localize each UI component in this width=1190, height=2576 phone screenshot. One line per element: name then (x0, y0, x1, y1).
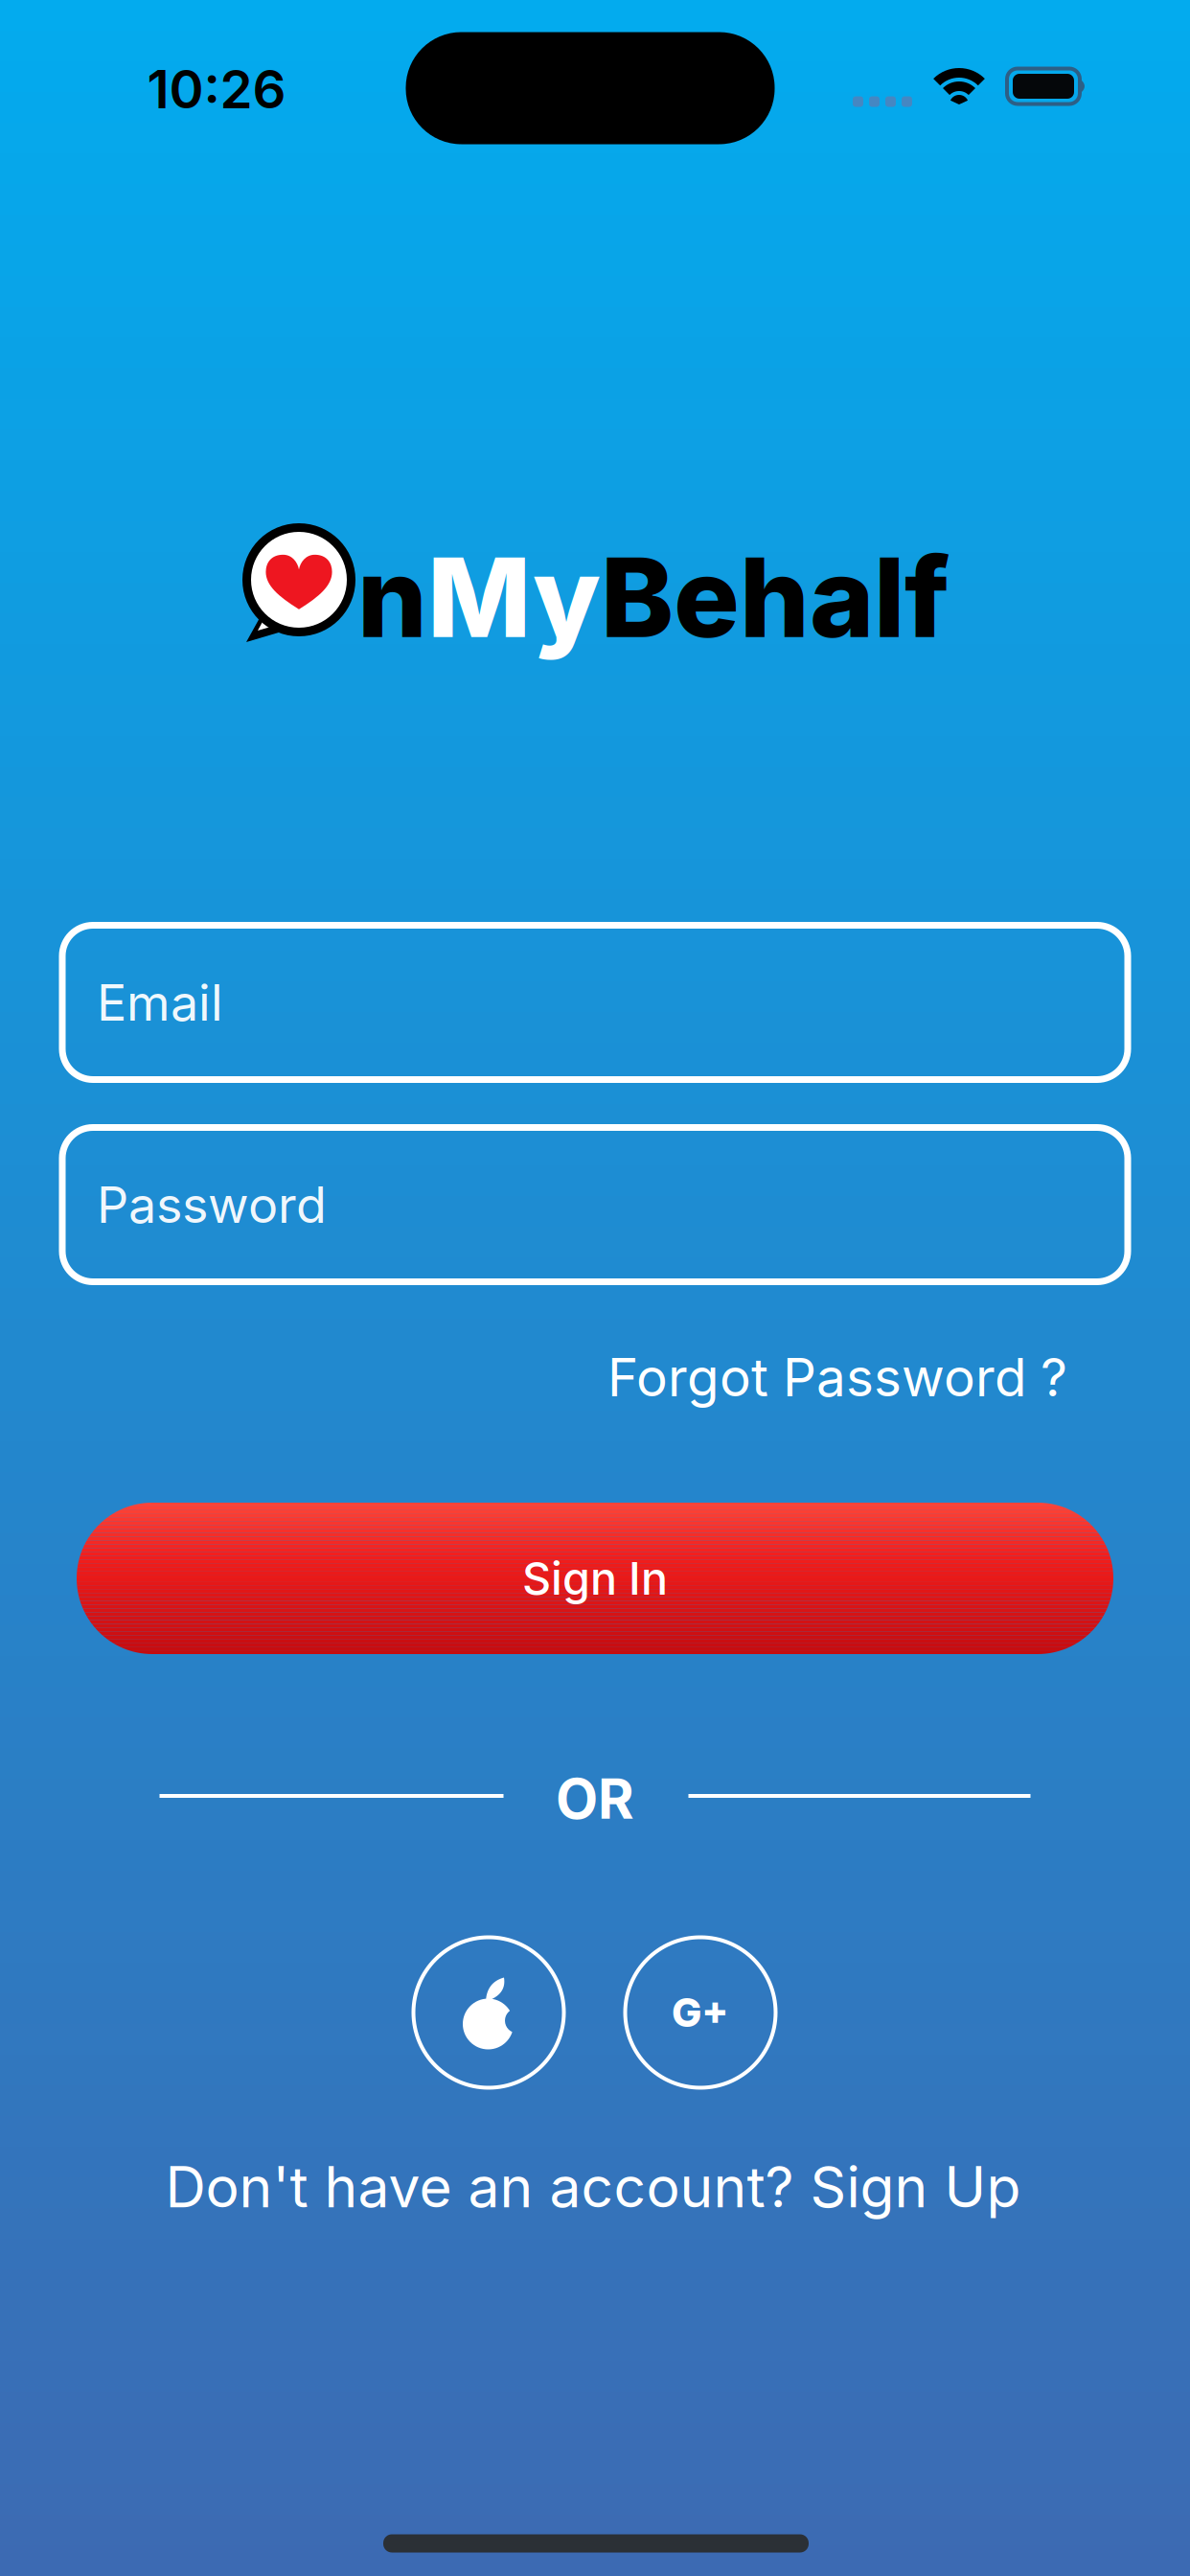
button[interactable]: Password (62, 1127, 1128, 1282)
staticText: Password (97, 1174, 327, 1235)
staticText: Email (97, 972, 223, 1033)
button[interactable]: Sign in with Apple (413, 1937, 564, 2088)
button[interactable]: Forgot Password ? (607, 1345, 1067, 1409)
button[interactable]: Email (62, 925, 1128, 1080)
staticText: G+ (672, 1989, 729, 2036)
staticText: Behalf (601, 531, 950, 663)
button[interactable]: Sign in with Google (625, 1937, 776, 2088)
staticText: Don't have an account? Sign Up (165, 2153, 1021, 2221)
staticText: OR (556, 1766, 634, 1832)
staticText: n (357, 531, 427, 663)
button[interactable]: Don't have an account? Sign Up (165, 2153, 1021, 2221)
staticText: 10:26 (147, 57, 286, 121)
button[interactable]: Sign In (77, 1503, 1113, 1654)
staticText: Forgot Password ? (607, 1345, 1067, 1409)
staticText: Sign In (522, 1551, 668, 1605)
staticText: My (427, 531, 601, 663)
